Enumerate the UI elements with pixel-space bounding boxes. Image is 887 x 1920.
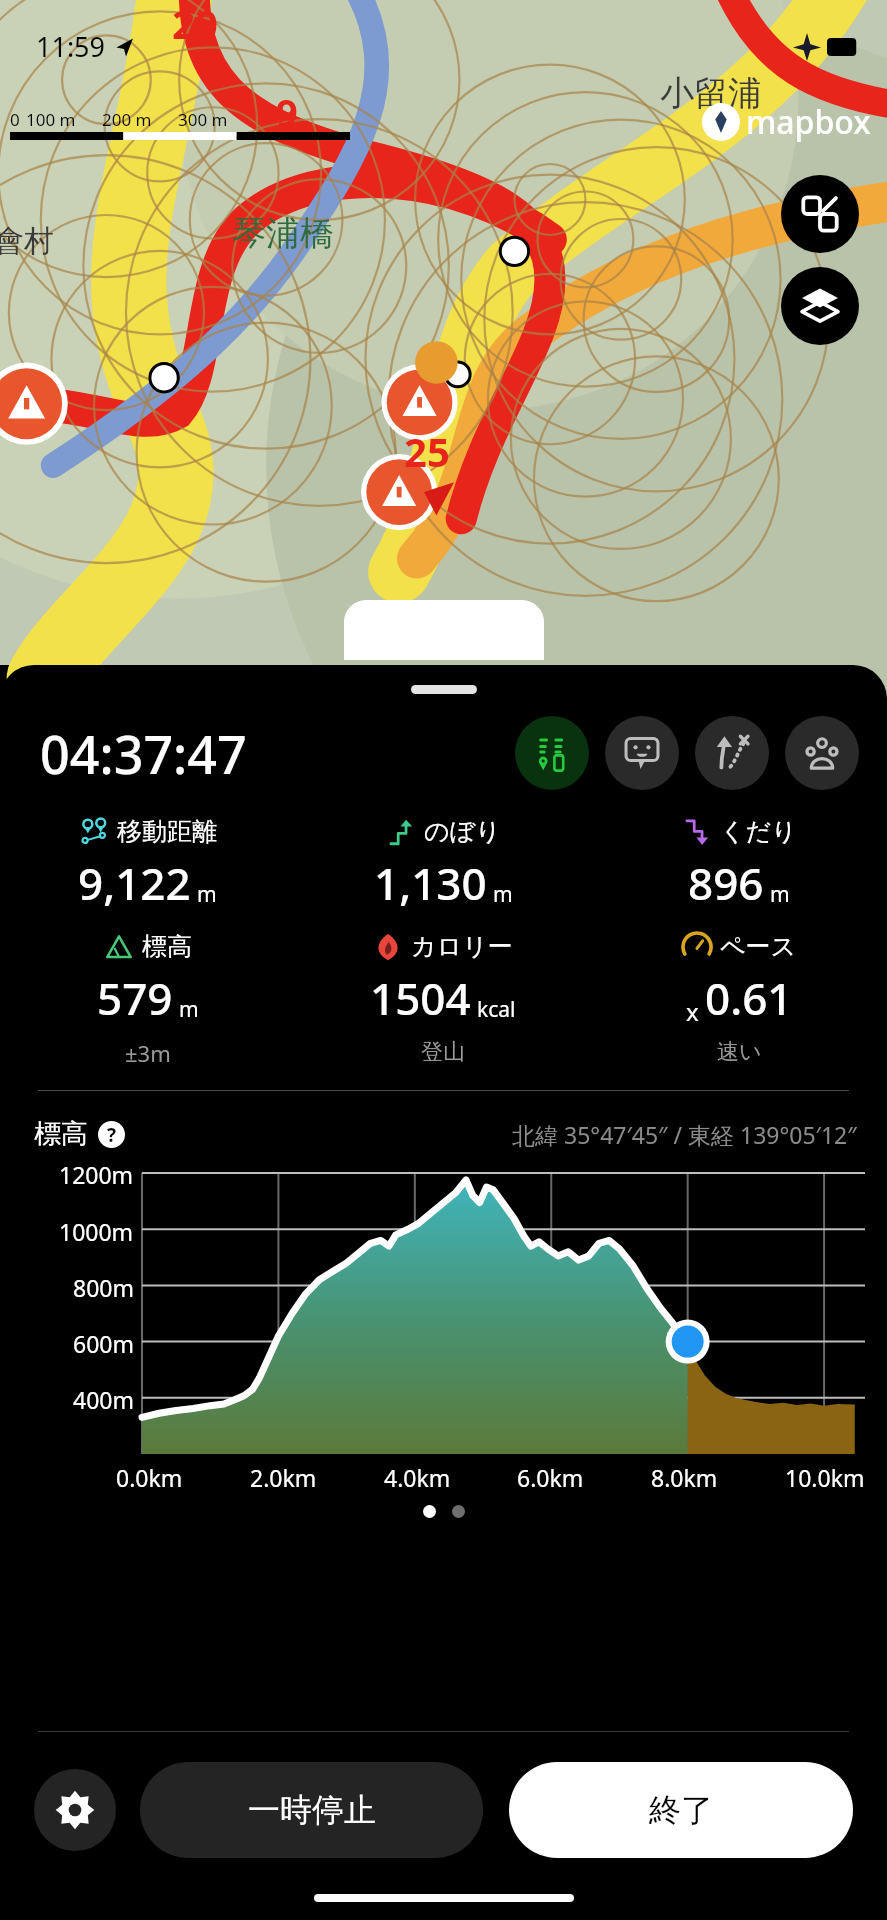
staticText: 896: [688, 853, 764, 913]
staticText: 1000m: [59, 1216, 134, 1247]
button[interactable]: Collapse map: [781, 175, 859, 253]
staticText: 04:37:47: [40, 718, 247, 789]
button[interactable]: Note: [605, 716, 679, 790]
staticText: 1,130: [374, 853, 487, 913]
staticText: 會村: [0, 222, 54, 260]
staticText: 0.61: [705, 968, 793, 1028]
button[interactable]: Map layers: [781, 267, 859, 345]
staticText: 11:59: [36, 28, 106, 65]
button[interactable]: Settings: [34, 1769, 116, 1851]
staticText: 9: [276, 86, 298, 138]
staticText: 300 m: [178, 108, 228, 131]
staticText: 小留浦: [660, 72, 762, 115]
button[interactable]: Route: [695, 716, 769, 790]
button[interactable]: 終了: [509, 1762, 853, 1858]
staticText: 一時停止: [248, 1790, 376, 1830]
staticText: 100 m: [26, 108, 76, 131]
staticText: x: [686, 995, 699, 1028]
button[interactable]: Help: [98, 1121, 125, 1148]
staticText: 2.0km: [250, 1462, 317, 1493]
staticText: 標高: [34, 1117, 88, 1151]
staticText: mapbox: [746, 100, 871, 144]
staticText: 400m: [73, 1384, 134, 1415]
staticText: 8.0km: [651, 1462, 718, 1493]
staticText: 琴浦橋: [232, 212, 334, 255]
staticText: のぼり: [424, 816, 501, 847]
staticText: 6.0km: [517, 1462, 584, 1493]
staticText: カロリー: [411, 931, 513, 962]
staticText: 0.0km: [116, 1462, 183, 1493]
staticText: 4.0km: [384, 1462, 451, 1493]
staticText: 25: [404, 424, 450, 478]
staticText: 標高: [142, 931, 192, 962]
button[interactable]: Stats: [515, 716, 589, 790]
staticText: 1200m: [59, 1159, 134, 1190]
staticText: 0: [10, 108, 20, 131]
staticText: 200 m: [102, 108, 152, 131]
staticText: 1504: [370, 968, 471, 1028]
staticText: kcal: [477, 995, 516, 1024]
staticText: ペース: [720, 931, 797, 962]
staticText: 移動距離: [117, 816, 217, 847]
staticText: 終了: [649, 1790, 713, 1830]
staticText: 20: [172, 0, 218, 50]
staticText: 10.0km: [785, 1462, 865, 1493]
button[interactable]: Members: [785, 716, 859, 790]
staticText: 登山: [421, 1038, 465, 1066]
button[interactable]: 一時停止: [140, 1762, 483, 1858]
staticText: 9,122: [78, 853, 191, 913]
staticText: 800m: [73, 1272, 134, 1303]
staticText: 579: [97, 968, 173, 1028]
staticText: 北緯 35°47′45″ / 東経 139°05′12″: [512, 1119, 857, 1150]
staticText: 600m: [73, 1328, 134, 1359]
staticText: m: [493, 880, 513, 909]
staticText: くだり: [720, 816, 797, 847]
staticText: m: [197, 880, 217, 909]
staticText: ±3m: [125, 1038, 171, 1068]
staticText: 速い: [717, 1038, 762, 1066]
staticText: ?: [107, 1122, 117, 1148]
staticText: m: [179, 995, 199, 1024]
staticText: m: [770, 880, 790, 909]
